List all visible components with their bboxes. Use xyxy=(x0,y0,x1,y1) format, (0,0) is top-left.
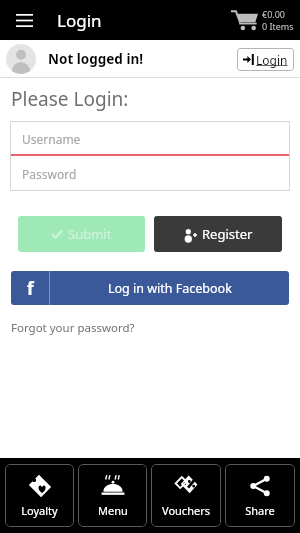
staticText: Submit xyxy=(68,225,112,243)
staticText: Login xyxy=(57,9,102,32)
button[interactable]: Loyalty xyxy=(5,464,74,527)
button[interactable]: Vouchers xyxy=(151,464,221,527)
staticText: Menu xyxy=(98,503,128,518)
staticText: Password xyxy=(22,166,77,182)
staticText: Not logged in! xyxy=(48,50,144,68)
staticText: Log in with Facebook xyxy=(108,280,232,297)
button[interactable]: Open navigation menu xyxy=(8,4,40,36)
button[interactable]: f xyxy=(11,271,289,305)
staticText: Login xyxy=(256,52,288,68)
button[interactable]: Register xyxy=(154,216,282,252)
staticText: Please Login: xyxy=(11,86,129,112)
staticText: f xyxy=(27,277,34,300)
staticText: 0 Items xyxy=(262,20,294,32)
staticText: Loyalty xyxy=(21,503,58,518)
button[interactable]: Shopping cart xyxy=(231,8,294,32)
button[interactable]: Username xyxy=(10,121,290,156)
staticText: Vouchers xyxy=(162,503,210,518)
staticText: €0.00 xyxy=(262,8,286,20)
button[interactable]: Password xyxy=(10,156,290,191)
staticText: Share xyxy=(245,503,275,518)
button[interactable]: Share xyxy=(225,464,295,527)
staticText: Username xyxy=(22,131,81,147)
button[interactable]: Submit xyxy=(18,216,145,252)
button[interactable]: Login xyxy=(237,48,294,71)
button[interactable]: Forgot your password? xyxy=(11,320,135,336)
staticText: Register xyxy=(202,225,253,243)
button[interactable]: Menu xyxy=(78,464,147,527)
